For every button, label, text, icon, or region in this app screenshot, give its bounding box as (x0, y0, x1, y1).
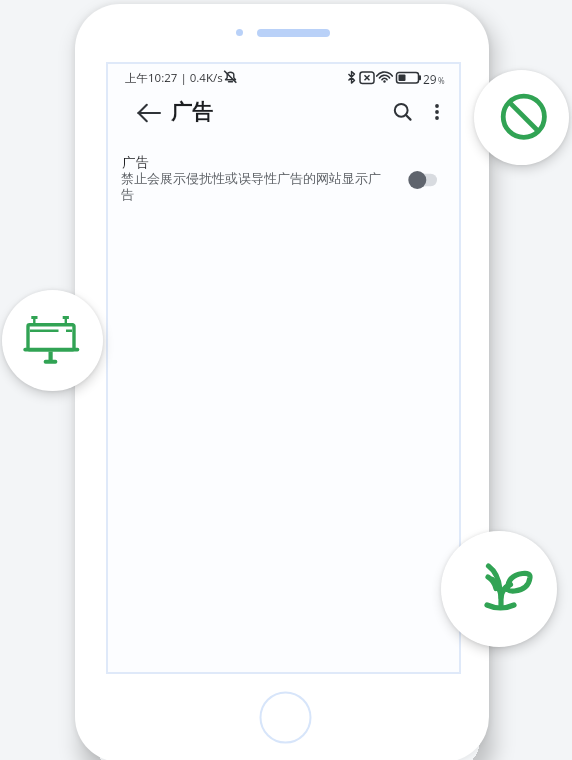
button[interactable]: 广告 (107, 146, 460, 209)
button[interactable] (393, 101, 415, 123)
staticText: 29 (423, 71, 437, 87)
button[interactable] (135, 99, 163, 127)
staticText: 广告 (122, 154, 149, 171)
button[interactable] (429, 101, 445, 123)
staticText: % (438, 75, 445, 86)
staticText: 广告 (171, 99, 213, 125)
staticText: 上午10:27 | 0.4K/s (125, 70, 223, 86)
button[interactable] (407, 169, 437, 189)
staticText: 禁止会展示侵扰性或误导性广告的网站显示广告 (121, 170, 383, 203)
